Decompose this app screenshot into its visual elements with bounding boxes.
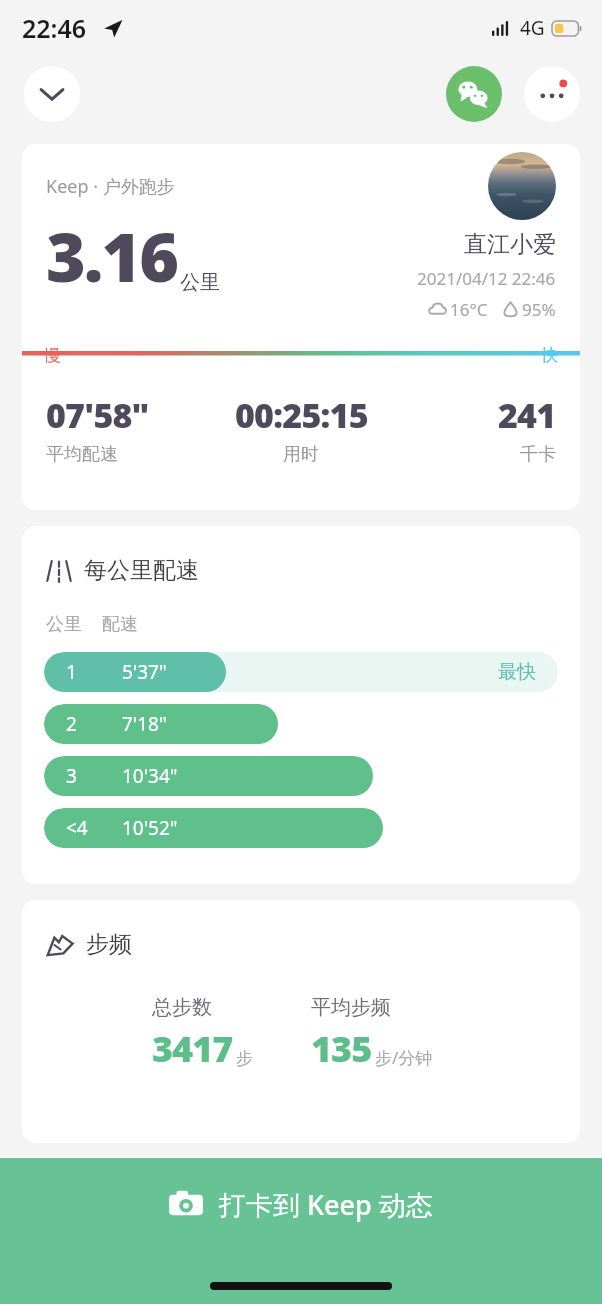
staticText: 用时 — [283, 443, 319, 466]
staticText: 7'18" — [122, 711, 167, 737]
staticText: 5'37" — [122, 659, 167, 685]
staticText: <4 — [66, 815, 88, 841]
staticText: 16°C — [450, 298, 488, 321]
button[interactable]: Keep · 户外跑步 — [22, 144, 580, 510]
staticText: 平均步频 — [311, 995, 391, 1020]
staticText: 千卡 — [520, 443, 556, 466]
staticText: 135 — [311, 1024, 372, 1073]
staticText: 直江小爱 — [464, 230, 556, 259]
staticText: 10'34" — [122, 763, 178, 789]
staticText: 95% — [522, 298, 556, 321]
staticText: 步频 — [86, 930, 132, 959]
button[interactable]: More options — [524, 66, 580, 122]
staticText: Keep · 户外跑步 — [46, 174, 175, 199]
staticText: 3.16 — [46, 209, 178, 302]
button[interactable]: 1 — [44, 652, 558, 692]
staticText: 快 — [541, 345, 558, 366]
staticText: 步 — [236, 1048, 253, 1069]
staticText: 241 — [498, 392, 556, 438]
staticText: 慢 — [44, 345, 61, 366]
button[interactable]: 步频 — [22, 900, 580, 1143]
staticText: 打卡到 Keep 动态 — [219, 1186, 433, 1223]
staticText: 总步数 — [152, 995, 212, 1020]
staticText: 4G — [520, 15, 545, 41]
staticText: 公里 — [180, 270, 220, 295]
button[interactable]: 每公里配速 — [22, 526, 580, 884]
staticText: 每公里配速 — [84, 556, 199, 585]
staticText: 步/分钟 — [375, 1046, 433, 1069]
button[interactable]: Share to WeChat — [446, 66, 502, 122]
button[interactable]: <4 — [44, 808, 558, 848]
staticText: 配速 — [102, 613, 138, 636]
staticText: 07'58" — [46, 392, 149, 438]
staticText: 3417 — [152, 1024, 233, 1073]
staticText: 1 — [66, 659, 77, 685]
staticText: 3 — [66, 763, 77, 789]
button[interactable]: 2 — [44, 704, 558, 744]
button[interactable]: Collapse — [24, 66, 80, 122]
staticText: 22:46 — [22, 11, 87, 45]
staticText: 00:25:15 — [235, 392, 368, 438]
button[interactable]: 3 — [44, 756, 558, 796]
staticText: 2021/04/12 22:46 — [417, 267, 556, 290]
staticText: 平均配速 — [46, 443, 118, 466]
staticText: 10'52" — [122, 815, 178, 841]
staticText: 2 — [66, 711, 77, 737]
staticText: 公里 — [46, 613, 82, 636]
staticText: 最快 — [498, 660, 536, 684]
button[interactable]: 打卡到 Keep 动态 — [169, 1186, 433, 1223]
